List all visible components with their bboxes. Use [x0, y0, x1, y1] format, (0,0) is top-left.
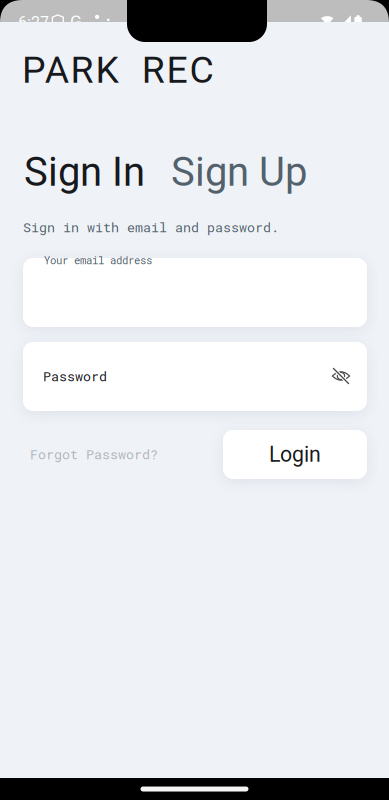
staticText: Sign Up	[171, 149, 307, 195]
button[interactable]: Sign Up	[171, 152, 316, 192]
staticText: Sign in with email and password.	[23, 218, 279, 236]
staticText: PARK REC	[22, 48, 213, 92]
button[interactable]: Sign In	[24, 152, 171, 192]
staticText: Login	[269, 442, 321, 467]
staticText: 6:27	[18, 13, 49, 32]
button[interactable]: Forgot Password?	[30, 447, 170, 461]
staticText: Password	[43, 367, 107, 385]
button[interactable]: Login	[223, 430, 367, 479]
staticText: Forgot Password?	[30, 445, 158, 463]
staticText: Your email address	[44, 253, 152, 267]
staticText: G	[70, 11, 82, 32]
staticText: Sign In	[24, 149, 145, 195]
button[interactable]: Show password	[331, 366, 351, 386]
